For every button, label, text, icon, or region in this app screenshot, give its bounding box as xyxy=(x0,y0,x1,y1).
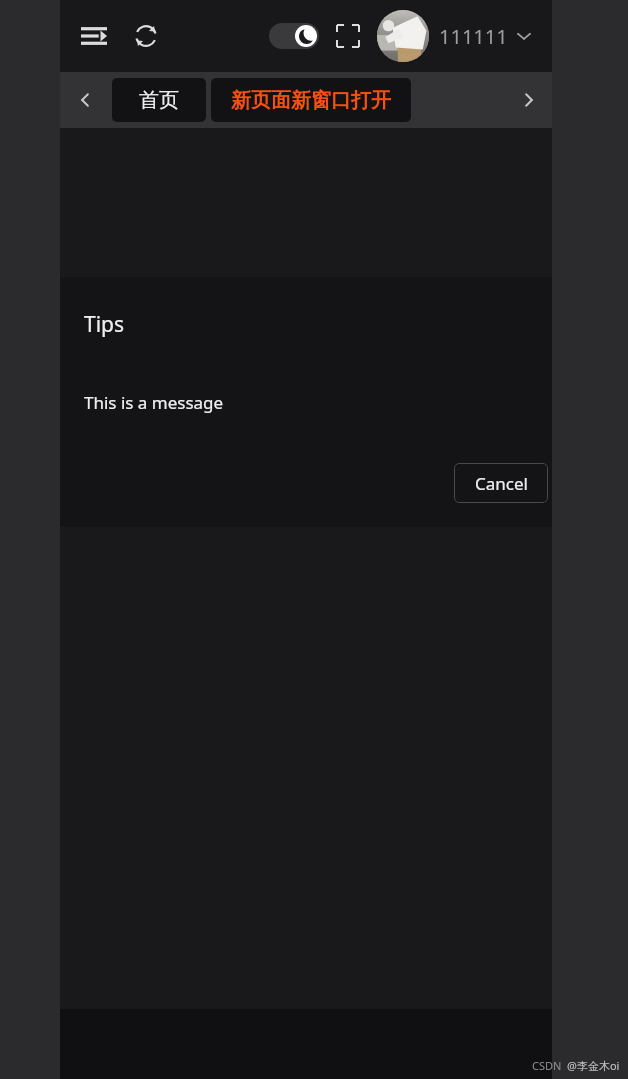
staticText: CSDN xyxy=(532,1058,562,1073)
staticText: 新页面新窗口打开 xyxy=(231,88,391,113)
staticText: 111111 xyxy=(439,23,508,50)
other: Profile avatar xyxy=(377,10,429,62)
button[interactable]: 新页面新窗口打开 xyxy=(211,78,411,122)
button[interactable]: Previous tabs xyxy=(70,85,100,115)
button[interactable]: Refresh xyxy=(124,14,168,58)
staticText: Cancel xyxy=(475,472,528,495)
button[interactable]: Dark mode toggle xyxy=(269,23,319,49)
button[interactable]: Profile avatar xyxy=(377,10,536,62)
button[interactable]: Cancel xyxy=(454,463,548,503)
button[interactable]: Menu xyxy=(72,14,116,58)
staticText: Tips xyxy=(84,310,125,339)
button[interactable]: Next tabs xyxy=(514,85,544,115)
staticText: This is a message xyxy=(84,391,224,414)
button[interactable]: Fullscreen xyxy=(329,17,367,55)
staticText: @李金木oi xyxy=(567,1058,620,1073)
button[interactable]: 首页 xyxy=(112,78,206,122)
staticText: 首页 xyxy=(139,88,179,113)
